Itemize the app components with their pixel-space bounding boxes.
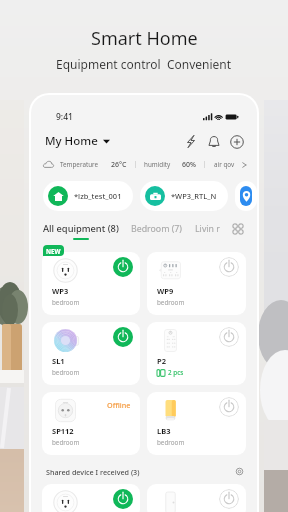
staticText: bedroom [52,438,80,447]
button[interactable]: Power toggle [147,392,246,455]
button[interactable]: Power toggle [147,252,246,315]
button[interactable]: Power toggle [42,252,140,315]
button[interactable]: Power toggle [42,484,140,512]
staticText: *lzb_test_001 [74,191,122,201]
staticText: air qov [214,160,235,169]
button[interactable]: Power toggle [42,322,140,385]
button[interactable]: Automation [182,133,199,150]
button[interactable] [235,181,257,211]
staticText: LB3 [157,426,171,436]
button[interactable]: *lzb_test_001 [43,181,133,211]
staticText: bedroom [157,438,185,447]
button[interactable]: Shared device I received (3) [42,465,246,478]
staticText: Offline [107,400,131,410]
staticText: All equipment (8) [43,222,119,235]
button[interactable]: *WP3_RTL_N [140,181,228,211]
staticText: Smart Home [91,26,198,51]
button[interactable]: Bedroom (7) [131,223,183,240]
staticText: 2 pcs [168,368,184,377]
button[interactable]: Livin r [195,223,220,240]
button[interactable]: Power toggle [147,322,246,385]
button[interactable]: Settings [233,465,246,478]
staticText: P2 [157,356,166,366]
staticText: WP9 [157,286,174,296]
button[interactable]: Power toggle [147,484,246,512]
staticText: 60% [182,160,196,170]
staticText: bedroom [157,298,185,307]
button[interactable]: Power toggle [219,489,239,509]
button[interactable]: Power toggle [219,257,239,277]
staticText: My Home [45,133,98,149]
button[interactable]: Power toggle [113,489,133,509]
staticText: SL1 [52,356,65,366]
button[interactable]: Offline [42,392,140,455]
button[interactable]: Grid view [230,223,246,239]
button[interactable]: All equipment (8) [43,222,119,240]
staticText: NEW [46,247,61,255]
button[interactable]: Notifications [205,133,222,150]
staticText: *WP3_RTL_N [171,191,217,201]
staticText: Temperature [60,160,99,169]
staticText: 26°C [111,160,127,170]
staticText: humidity [144,160,171,169]
button[interactable]: Add device [228,133,245,150]
staticText: SP112 [52,426,74,436]
staticText: Equipment control Convenient [56,56,232,72]
button[interactable]: Power toggle [113,327,133,347]
staticText: Shared device I received (3) [46,467,140,477]
staticText: bedroom [52,368,80,377]
button[interactable]: Temperature [43,158,247,171]
button[interactable]: Power toggle [113,257,133,277]
staticText: bedroom [52,298,80,307]
button[interactable]: Power toggle [219,327,239,347]
staticText: 9:41 [56,111,73,122]
button[interactable]: My Home [45,133,110,149]
button[interactable]: Power toggle [219,397,239,417]
staticText: WP3 [52,286,69,296]
